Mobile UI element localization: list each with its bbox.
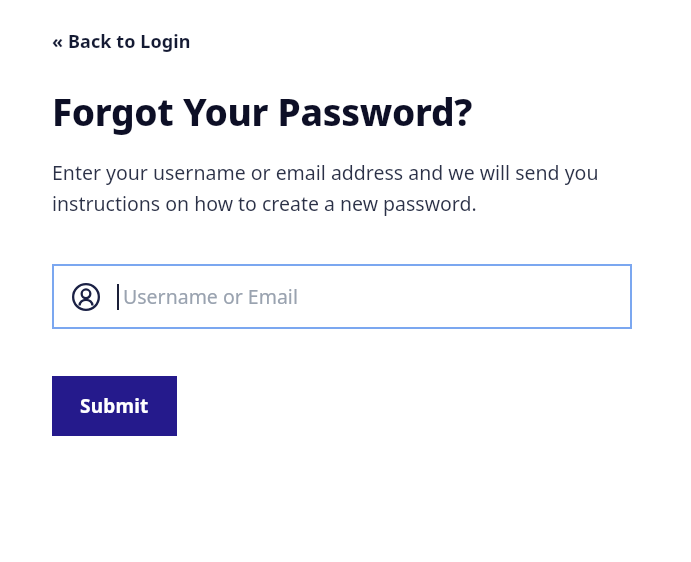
- staticText: Submit: [80, 393, 149, 419]
- button[interactable]: Submit: [52, 376, 177, 436]
- staticText: Forgot Your Password?: [52, 86, 473, 136]
- staticText: Enter your username or email address and…: [52, 159, 637, 217]
- staticText: « Back to Login: [52, 29, 191, 54]
- button[interactable]: « Back to Login: [52, 29, 191, 54]
- other: User: [72, 283, 100, 311]
- button[interactable]: User: [52, 264, 632, 329]
- staticText: Username or Email: [123, 283, 298, 310]
